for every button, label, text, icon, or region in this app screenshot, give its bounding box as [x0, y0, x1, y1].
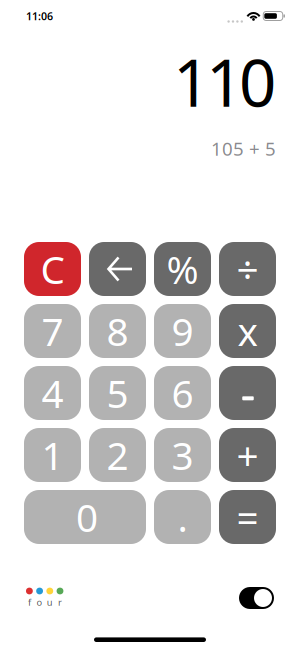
button[interactable]: +	[219, 428, 276, 482]
button[interactable]: =	[219, 490, 276, 544]
staticText: 110	[173, 38, 276, 125]
button[interactable]: 7	[24, 304, 81, 358]
button[interactable]: .	[154, 490, 211, 544]
button[interactable]: Subtract	[219, 366, 276, 420]
button[interactable]: 0	[24, 490, 146, 544]
staticText: 105 + 5	[211, 136, 276, 161]
staticText: =	[236, 491, 258, 543]
staticText: u	[47, 596, 53, 608]
staticText: 11:06	[26, 9, 53, 23]
staticText: C	[40, 243, 64, 295]
staticText: r	[58, 596, 62, 608]
staticText: 5	[106, 367, 128, 419]
staticText: 2	[106, 429, 128, 481]
button[interactable]: 2	[89, 428, 146, 482]
staticText: 8	[106, 305, 128, 357]
staticText: 3	[171, 429, 193, 481]
button[interactable]: Dark mode	[239, 587, 274, 609]
button[interactable]: 8	[89, 304, 146, 358]
staticText: 0	[76, 491, 98, 543]
staticText: ÷	[236, 243, 258, 295]
button[interactable]: ÷	[219, 242, 276, 296]
staticText: f	[28, 596, 31, 608]
button[interactable]: x	[219, 304, 276, 358]
button[interactable]: C	[24, 242, 81, 296]
staticText: +	[236, 429, 258, 481]
staticText: %	[166, 243, 198, 295]
staticText: 6	[171, 367, 193, 419]
button[interactable]: 9	[154, 304, 211, 358]
button[interactable]: four	[26, 588, 63, 608]
button[interactable]: 3	[154, 428, 211, 482]
button[interactable]: Delete	[89, 242, 146, 296]
staticText: 4	[41, 367, 63, 419]
button[interactable]: 5	[89, 366, 146, 420]
staticText: x	[237, 305, 257, 357]
staticText: 7	[41, 305, 63, 357]
staticText: .	[177, 491, 187, 543]
staticText: o	[37, 596, 43, 608]
button[interactable]: 1	[24, 428, 81, 482]
button[interactable]: 4	[24, 366, 81, 420]
staticText: 9	[171, 305, 193, 357]
button[interactable]: 6	[154, 366, 211, 420]
staticText: 1	[41, 429, 63, 481]
button[interactable]: %	[154, 242, 211, 296]
